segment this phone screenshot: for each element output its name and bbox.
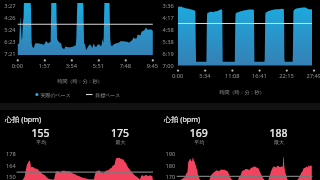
button[interactable] (0, 0, 320, 180)
